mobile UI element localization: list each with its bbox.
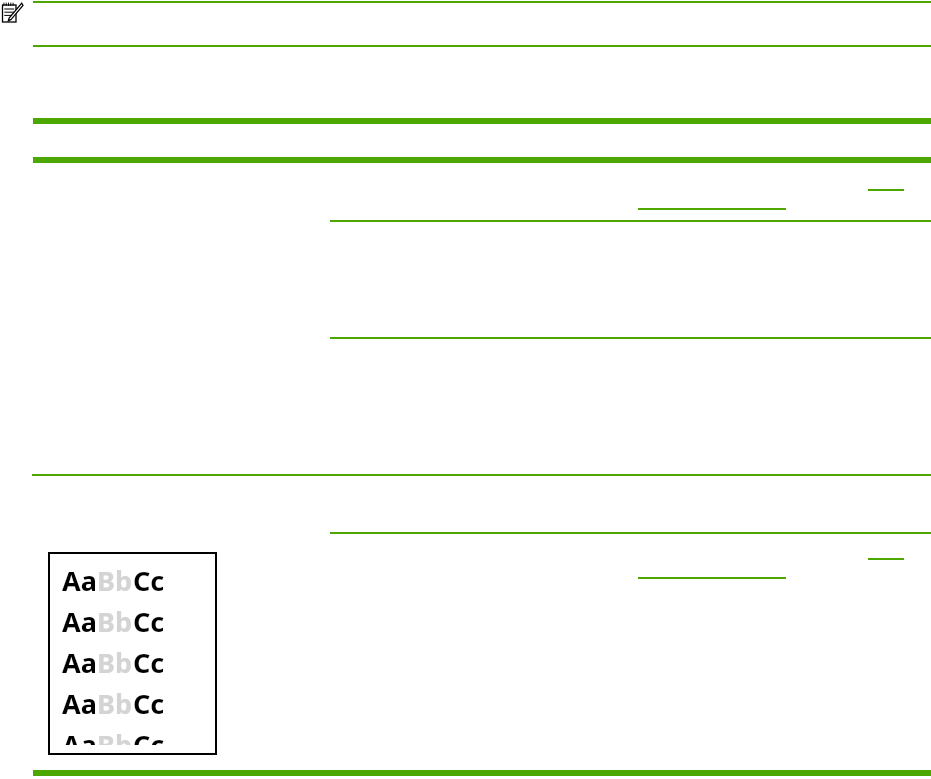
staticText: Cc — [133, 562, 165, 599]
staticText: Bb — [97, 644, 133, 681]
staticText: Cc — [133, 644, 165, 681]
staticText: Aa — [62, 685, 97, 722]
button[interactable]: Aa — [48, 552, 217, 755]
staticText: Bb — [97, 685, 133, 722]
staticText: Bb — [97, 562, 133, 599]
staticText: Cc — [133, 603, 165, 640]
staticText: Bb — [97, 726, 133, 745]
staticText: Aa — [62, 644, 97, 681]
staticText: Bb — [97, 603, 133, 640]
staticText: Cc — [133, 685, 165, 722]
staticText: Cc — [133, 726, 165, 745]
staticText: Aa — [62, 726, 97, 745]
staticText: Aa — [62, 562, 97, 599]
staticText: Aa — [62, 603, 97, 640]
button[interactable]: Note — [1, 2, 23, 24]
